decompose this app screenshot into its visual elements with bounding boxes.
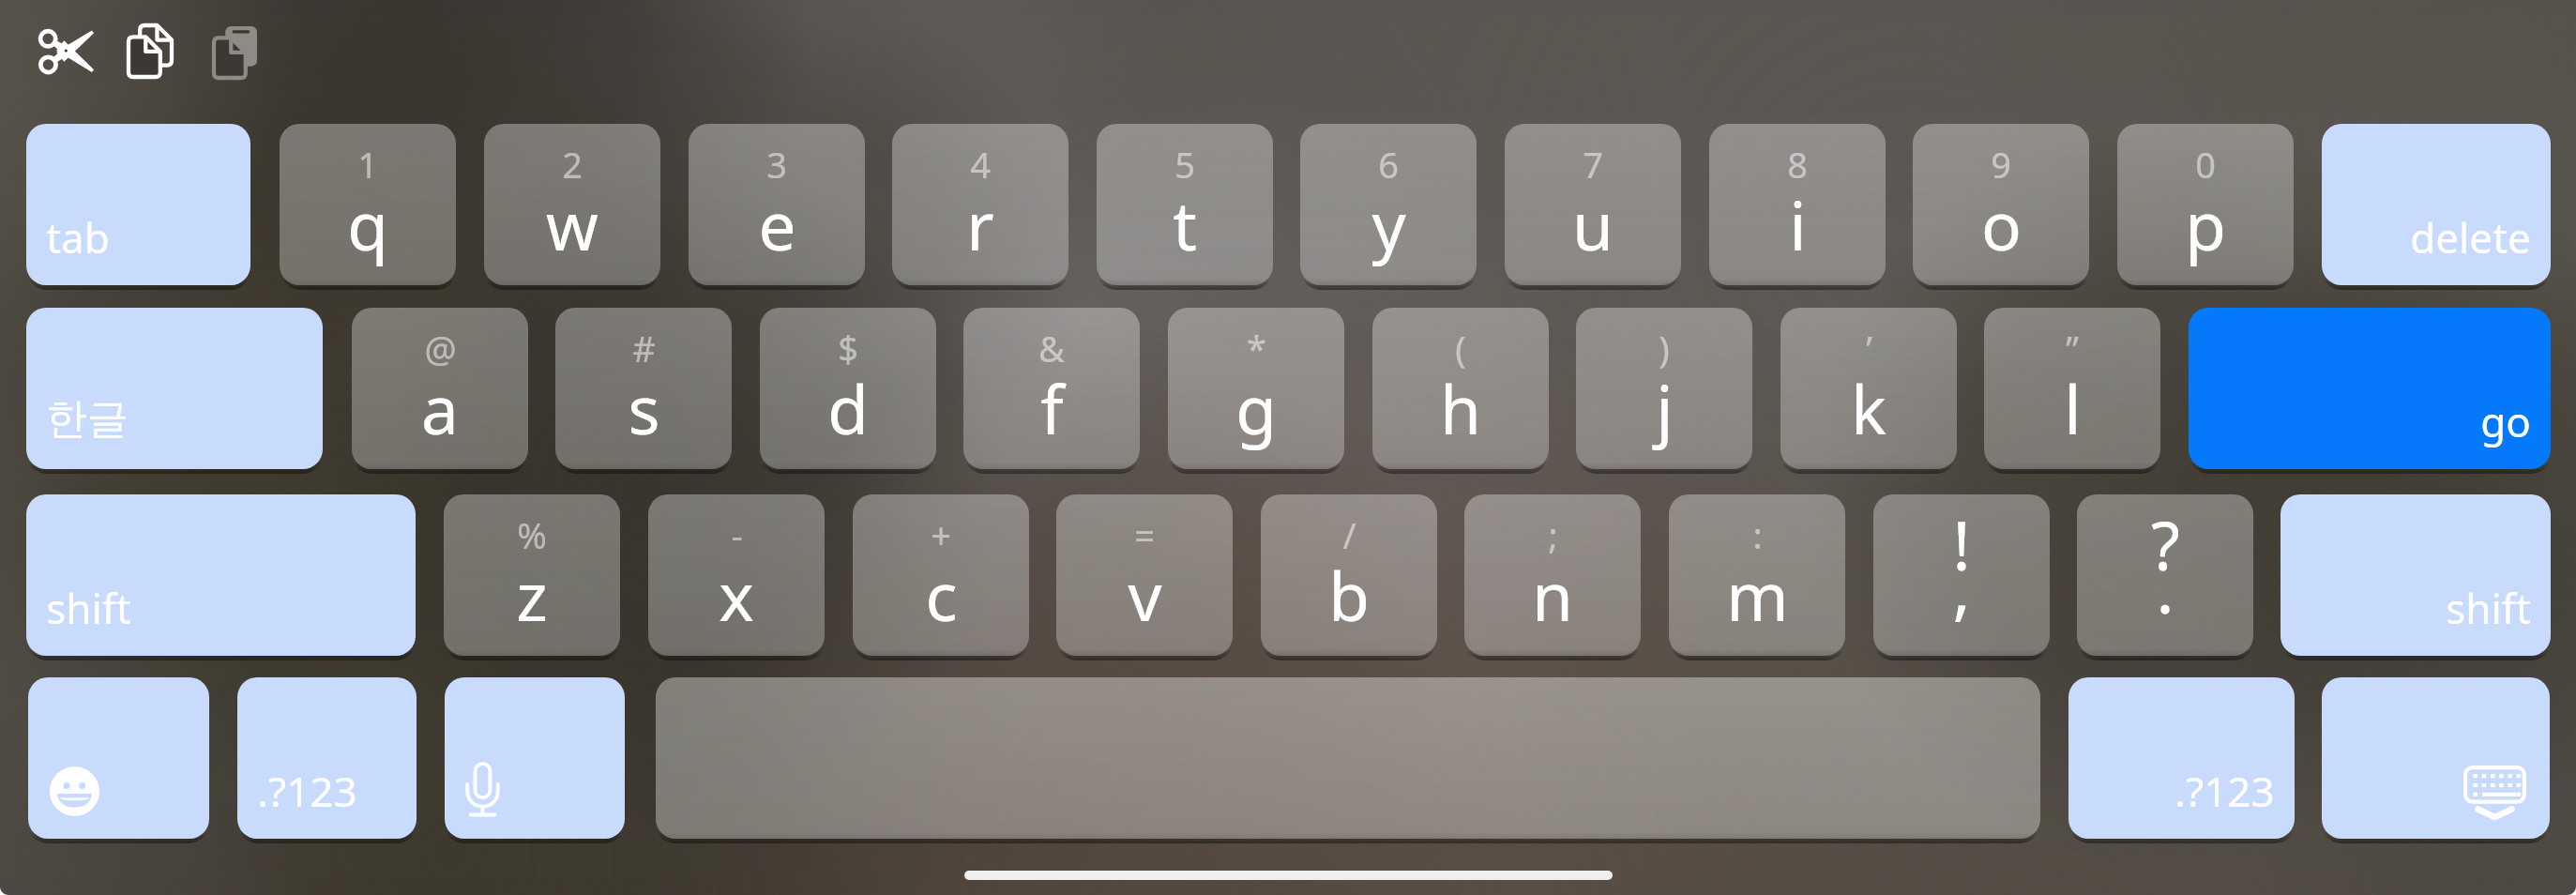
staticText: g (1235, 363, 1277, 454)
button[interactable]: # (555, 308, 732, 469)
staticText: 한글 (46, 393, 129, 445)
staticText: + (931, 510, 951, 559)
button[interactable]: @ (352, 308, 528, 469)
staticText: delete (2410, 209, 2531, 265)
button[interactable]: 4 (892, 124, 1068, 285)
staticText: tab (46, 209, 110, 265)
button[interactable]: 6 (1300, 124, 1477, 285)
staticText: 4 (970, 140, 991, 189)
staticText: ; (1548, 510, 1558, 559)
staticText: 1 (357, 140, 378, 189)
staticText: # (632, 324, 656, 372)
staticText: , (1952, 542, 1971, 633)
staticText: & (1038, 324, 1065, 372)
staticText: $ (838, 324, 858, 372)
button[interactable]: - (648, 494, 825, 656)
button[interactable]: Paste (214, 26, 257, 78)
staticText: ? (2151, 499, 2180, 590)
staticText: t (1173, 179, 1197, 270)
staticText: l (2064, 363, 2082, 454)
staticText: shift (46, 580, 131, 636)
staticText: 0 (2195, 140, 2216, 189)
button[interactable]: 7 (1505, 124, 1681, 285)
staticText: m (1726, 550, 1789, 641)
button[interactable]: : (1669, 494, 1845, 656)
staticText: .?123 (257, 763, 357, 819)
button[interactable]: ’ (1780, 308, 1957, 469)
staticText: . (2156, 542, 2174, 633)
button[interactable]: ! (1873, 494, 2050, 656)
button[interactable]: * (1168, 308, 1344, 469)
staticText: w (546, 179, 599, 270)
staticText: j (1656, 363, 1674, 454)
button[interactable]: 1 (280, 124, 456, 285)
staticText: d (827, 363, 869, 454)
button[interactable]: ; (1464, 494, 1641, 656)
button[interactable]: 5 (1097, 124, 1273, 285)
staticText: u (1572, 179, 1614, 270)
button[interactable]: .?123 (2068, 677, 2295, 839)
staticText: c (925, 550, 958, 641)
staticText: 8 (1787, 140, 1808, 189)
staticText: = (1134, 510, 1155, 559)
button[interactable]: 9 (1913, 124, 2089, 285)
button[interactable]: & (963, 308, 1140, 469)
staticText: k (1851, 363, 1887, 454)
staticText: n (1532, 550, 1573, 641)
button[interactable]: Hide keyboard (2322, 677, 2550, 839)
staticText: ) (1659, 324, 1670, 372)
button[interactable]: Emoji keyboard (28, 677, 209, 839)
staticText: f (1040, 363, 1064, 454)
staticText: 7 (1583, 140, 1603, 189)
button[interactable]: .?123 (237, 677, 417, 839)
button[interactable]: tab (26, 124, 250, 285)
staticText: 6 (1378, 140, 1399, 189)
button[interactable]: 한글 (26, 308, 323, 469)
staticText: ! (1952, 499, 1971, 590)
staticText: - (731, 510, 743, 559)
staticText: .?123 (2174, 763, 2275, 819)
button[interactable]: = (1056, 494, 1233, 656)
staticText: a (421, 363, 459, 454)
button[interactable]: ? (2077, 494, 2253, 656)
staticText: ’ (1866, 324, 1872, 372)
staticText: q (347, 179, 388, 270)
button[interactable]: % (444, 494, 620, 656)
button[interactable]: delete (2322, 124, 2551, 285)
button[interactable]: Dictation (445, 677, 625, 839)
staticText: e (758, 179, 796, 270)
staticText: ” (2066, 324, 2079, 372)
staticText: i (1789, 179, 1807, 270)
staticText: 3 (766, 140, 787, 189)
staticText: 9 (1991, 140, 2011, 189)
staticText: p (2185, 179, 2226, 270)
button[interactable]: shift (2281, 494, 2551, 656)
staticText: r (966, 179, 994, 270)
staticText: o (1981, 179, 2022, 270)
staticText: h (1440, 363, 1481, 454)
button[interactable]: ) (1576, 308, 1752, 469)
button[interactable]: 8 (1709, 124, 1886, 285)
button[interactable]: Copy (129, 25, 172, 77)
button[interactable]: 0 (2117, 124, 2294, 285)
button[interactable]: 3 (689, 124, 865, 285)
staticText: z (516, 550, 548, 641)
button[interactable]: / (1261, 494, 1437, 656)
button[interactable]: Cut (38, 29, 93, 72)
button[interactable]: ” (1984, 308, 2160, 469)
staticText: % (517, 510, 547, 559)
button[interactable]: go (2189, 308, 2551, 469)
button[interactable]: $ (760, 308, 936, 469)
button[interactable]: shift (26, 494, 416, 656)
button[interactable]: ( (1372, 308, 1549, 469)
staticText: x (719, 550, 754, 641)
staticText: b (1328, 550, 1370, 641)
staticText: * (1247, 324, 1266, 372)
button[interactable]: space (656, 677, 2040, 839)
button[interactable]: 2 (484, 124, 660, 285)
staticText: : (1752, 510, 1763, 559)
staticText: 2 (562, 140, 583, 189)
button[interactable]: + (853, 494, 1029, 656)
staticText: / (1342, 510, 1356, 559)
staticText: v (1128, 550, 1162, 641)
